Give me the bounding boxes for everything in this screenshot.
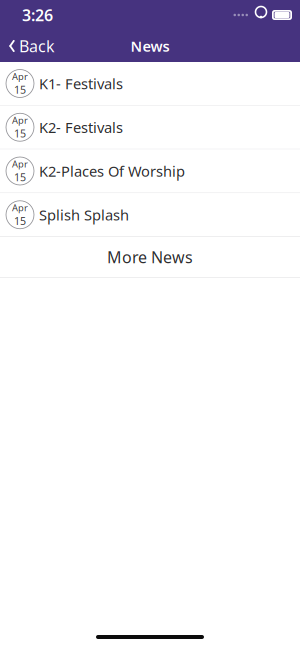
staticText: 15 [14,126,26,141]
staticText: More News [107,246,193,268]
staticText: Apr [12,201,28,214]
staticText: Apr [12,70,28,83]
button[interactable]: Apr [0,193,300,237]
button[interactable]: More News [0,237,300,278]
button[interactable]: Apr [0,149,300,193]
staticText: 3:26 [22,4,53,26]
staticText: 15 [14,170,26,184]
staticText: K2-Places Of Worship [39,161,185,181]
staticText: 15 [14,214,26,228]
staticText: News [130,36,169,56]
staticText: Splish Splash [39,205,129,224]
button[interactable]: Apr [0,106,300,150]
staticText: Apr [12,158,28,170]
staticText: Apr [12,114,28,126]
staticText: K2- Festivals [39,117,123,137]
staticText: K1- Festivals [39,74,123,93]
button[interactable]: Apr [0,62,300,106]
button[interactable]: Back [0,29,55,63]
staticText: Back [19,35,55,57]
staticText: 15 [14,83,26,97]
